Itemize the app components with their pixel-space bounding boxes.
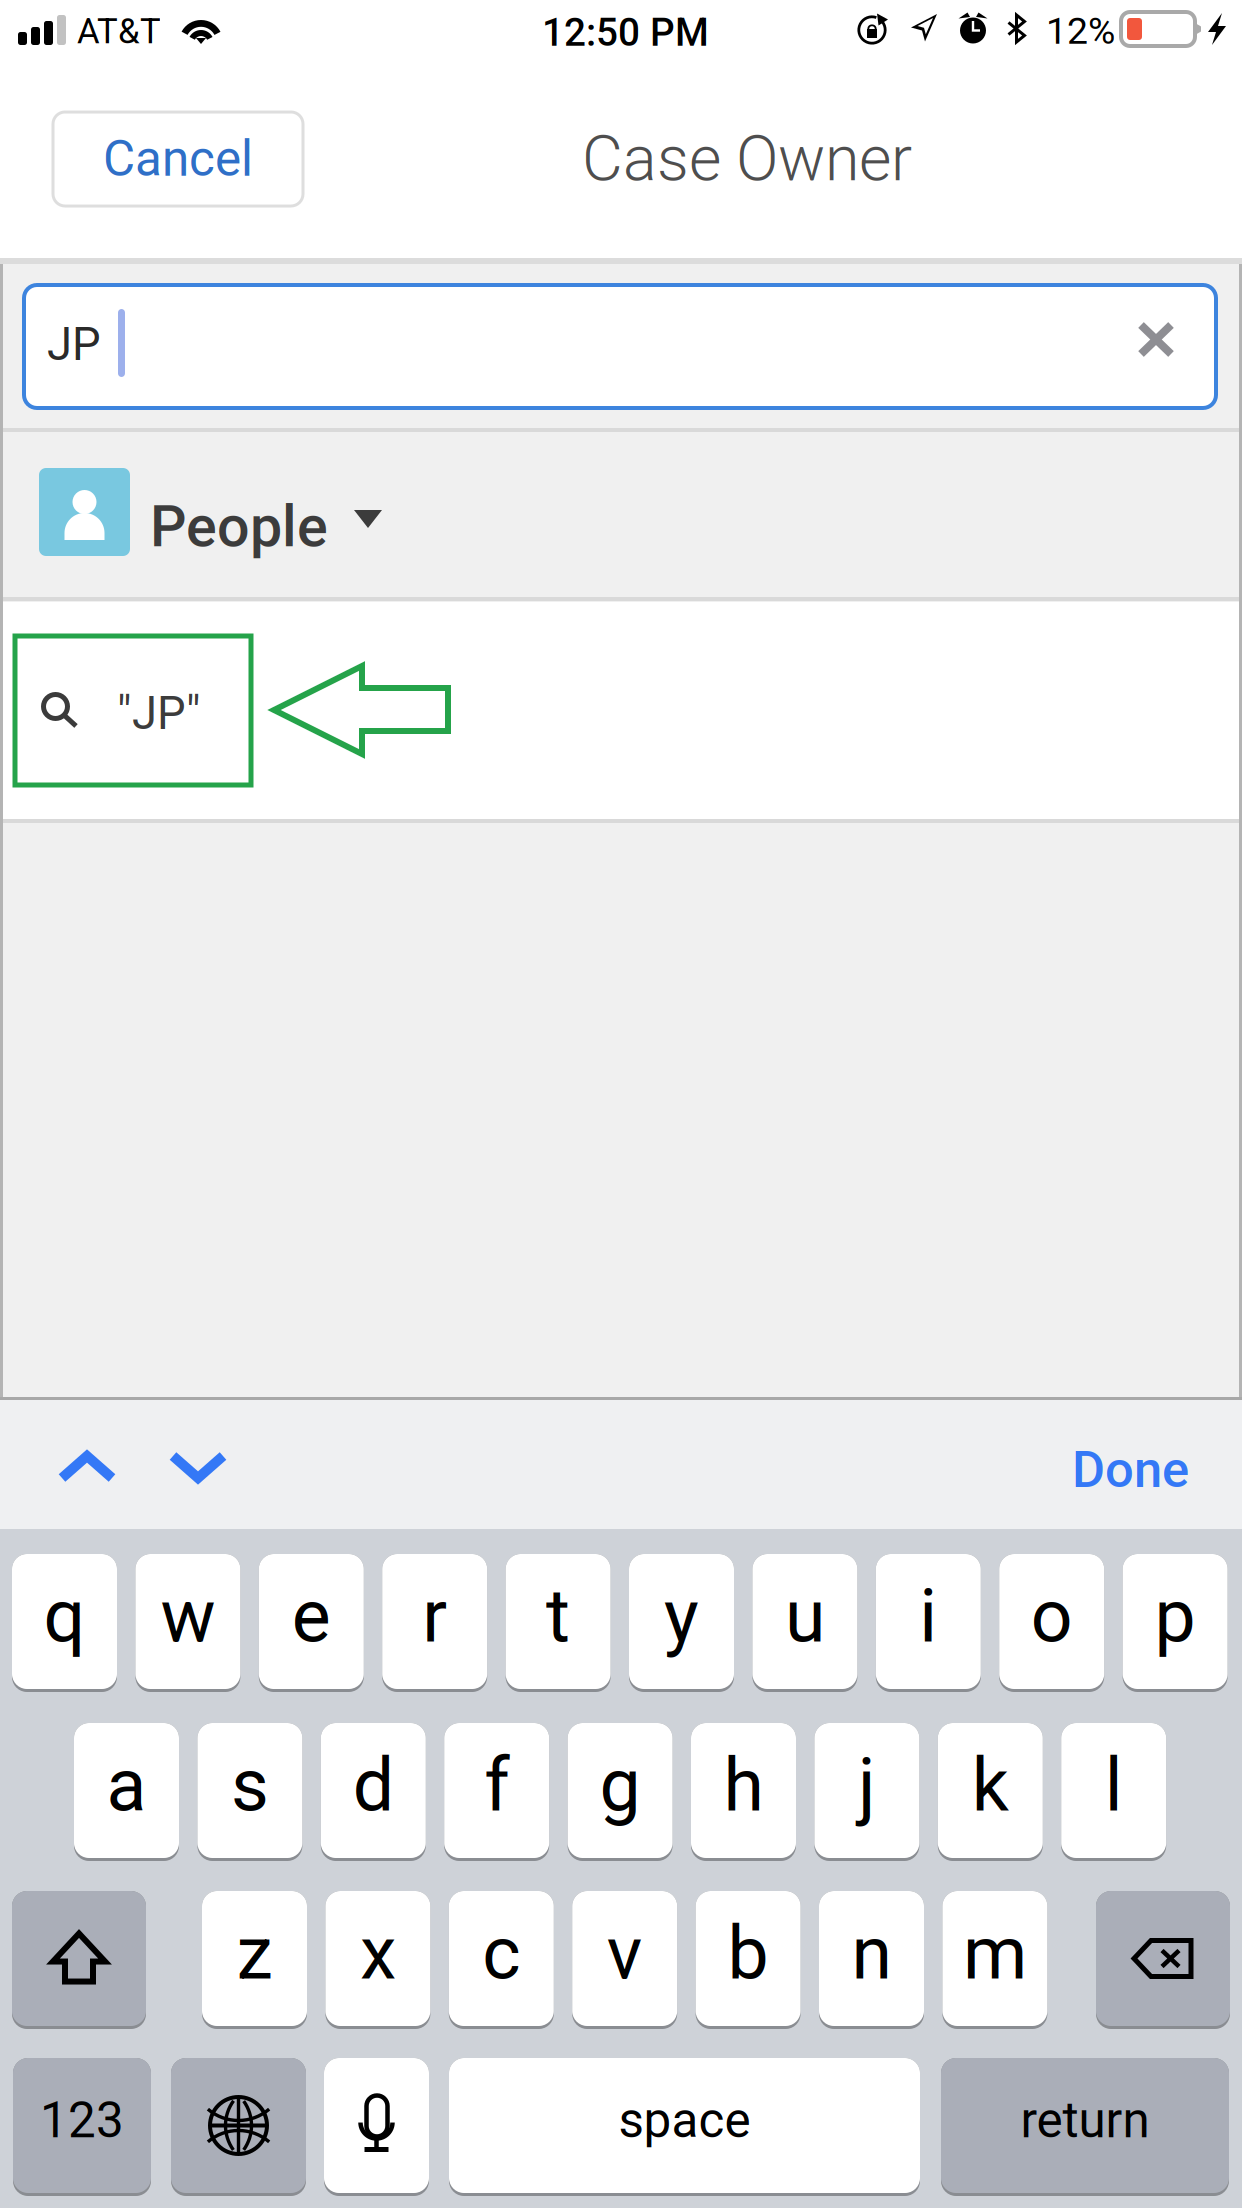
staticText: f	[484, 1742, 509, 1828]
button[interactable]: r	[382, 1551, 487, 1692]
staticText: v	[607, 1910, 643, 1996]
staticText: p	[1155, 1573, 1196, 1659]
button[interactable]: l	[1061, 1720, 1166, 1861]
button[interactable]: h	[691, 1720, 796, 1861]
staticText: b	[728, 1910, 769, 1996]
staticText: n	[851, 1910, 891, 1996]
button[interactable]: q	[12, 1551, 117, 1692]
staticText: 123	[40, 2092, 124, 2149]
staticText: r	[422, 1573, 447, 1659]
button[interactable]	[1096, 1888, 1230, 2029]
button[interactable]: space	[449, 2055, 920, 2196]
staticText: k	[972, 1742, 1009, 1828]
button[interactable]: n	[819, 1888, 924, 2029]
button[interactable]: Clear text	[1105, 290, 1207, 389]
staticText: m	[963, 1910, 1027, 1996]
staticText: Done	[1072, 1440, 1189, 1499]
button[interactable]: x	[325, 1888, 430, 2029]
staticText: y	[664, 1573, 699, 1659]
staticText: w	[160, 1573, 215, 1659]
button[interactable]	[171, 2055, 306, 2196]
button[interactable]: y	[629, 1551, 734, 1692]
staticText: space	[618, 2092, 750, 2149]
staticText: o	[1031, 1573, 1073, 1659]
staticText: g	[600, 1742, 641, 1828]
button[interactable]: 123	[13, 2055, 151, 2196]
staticText: x	[360, 1910, 396, 1996]
button[interactable]: a	[74, 1720, 179, 1861]
button[interactable]: return	[941, 2055, 1229, 2196]
staticText: return	[1020, 2092, 1149, 2149]
staticText: Cancel	[103, 130, 253, 188]
staticText: 12:50 PM	[542, 10, 709, 55]
staticText: h	[723, 1742, 763, 1828]
button[interactable]: s	[197, 1720, 302, 1861]
button[interactable]	[12, 1888, 146, 2029]
staticText: u	[785, 1573, 825, 1659]
button[interactable]: f	[444, 1720, 549, 1861]
staticText: e	[292, 1573, 331, 1659]
staticText: Case Owner	[582, 122, 912, 195]
staticText: l	[1105, 1742, 1123, 1828]
button[interactable]: Previous field	[29, 1427, 145, 1507]
staticText: q	[43, 1573, 85, 1659]
button[interactable]: i	[876, 1551, 981, 1692]
button[interactable]: t	[506, 1551, 611, 1692]
button[interactable]: d	[321, 1720, 426, 1861]
staticText: 12%	[1046, 9, 1115, 53]
button[interactable]: Done	[1046, 1416, 1215, 1523]
button[interactable]: People	[3, 432, 1239, 597]
button[interactable]: k	[938, 1720, 1043, 1861]
button[interactable]: Next field	[140, 1427, 256, 1507]
button[interactable]: g	[568, 1720, 673, 1861]
staticText: JP	[47, 318, 101, 371]
button[interactable]: v	[572, 1888, 677, 2029]
button[interactable]: p	[1123, 1551, 1228, 1692]
staticText: s	[231, 1742, 269, 1828]
staticText: d	[353, 1742, 394, 1828]
staticText: a	[106, 1742, 146, 1828]
staticText: i	[919, 1573, 937, 1659]
button[interactable]	[324, 2055, 429, 2196]
button[interactable]: e	[259, 1551, 364, 1692]
button[interactable]: o	[999, 1551, 1104, 1692]
button[interactable]: "JP"	[15, 636, 251, 785]
staticText: c	[482, 1910, 520, 1996]
staticText: People	[150, 493, 328, 560]
button[interactable]: w	[135, 1551, 240, 1692]
button[interactable]: j	[814, 1720, 919, 1861]
staticText: AT&T	[77, 11, 161, 52]
button[interactable]: u	[752, 1551, 857, 1692]
button[interactable]: Cancel	[53, 112, 303, 206]
button[interactable]: m	[942, 1888, 1047, 2029]
staticText: z	[236, 1910, 272, 1996]
staticText: j	[858, 1742, 876, 1828]
button[interactable]: b	[696, 1888, 801, 2029]
button[interactable]: c	[449, 1888, 554, 2029]
staticText: "JP"	[117, 687, 201, 740]
staticText: t	[546, 1573, 570, 1659]
button[interactable]: z	[202, 1888, 307, 2029]
